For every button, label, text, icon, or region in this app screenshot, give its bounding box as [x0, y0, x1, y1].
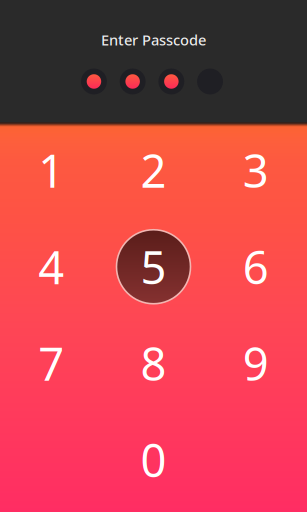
staticText: 0: [140, 430, 166, 490]
staticText: 9: [243, 333, 269, 393]
staticText: 3: [243, 140, 269, 200]
button[interactable]: [205, 411, 307, 508]
button[interactable]: 6: [205, 218, 307, 315]
button[interactable]: 0: [102, 411, 205, 508]
button[interactable]: 8: [102, 315, 205, 411]
button[interactable]: 2: [102, 122, 205, 218]
button[interactable]: 4: [0, 218, 102, 315]
staticText: Enter Passcode: [101, 30, 206, 49]
staticText: 6: [243, 237, 269, 297]
staticText: 8: [140, 333, 166, 393]
staticText: 5: [140, 237, 166, 297]
button[interactable]: 9: [205, 315, 307, 411]
button[interactable]: [0, 411, 102, 508]
button[interactable]: 1: [0, 122, 102, 218]
staticText: 4: [38, 237, 64, 297]
staticText: 1: [38, 140, 64, 200]
button[interactable]: 7: [0, 315, 102, 411]
button[interactable]: 3: [205, 122, 307, 218]
button[interactable]: 5: [102, 218, 205, 315]
staticText: 7: [38, 333, 64, 393]
staticText: 2: [140, 140, 166, 200]
